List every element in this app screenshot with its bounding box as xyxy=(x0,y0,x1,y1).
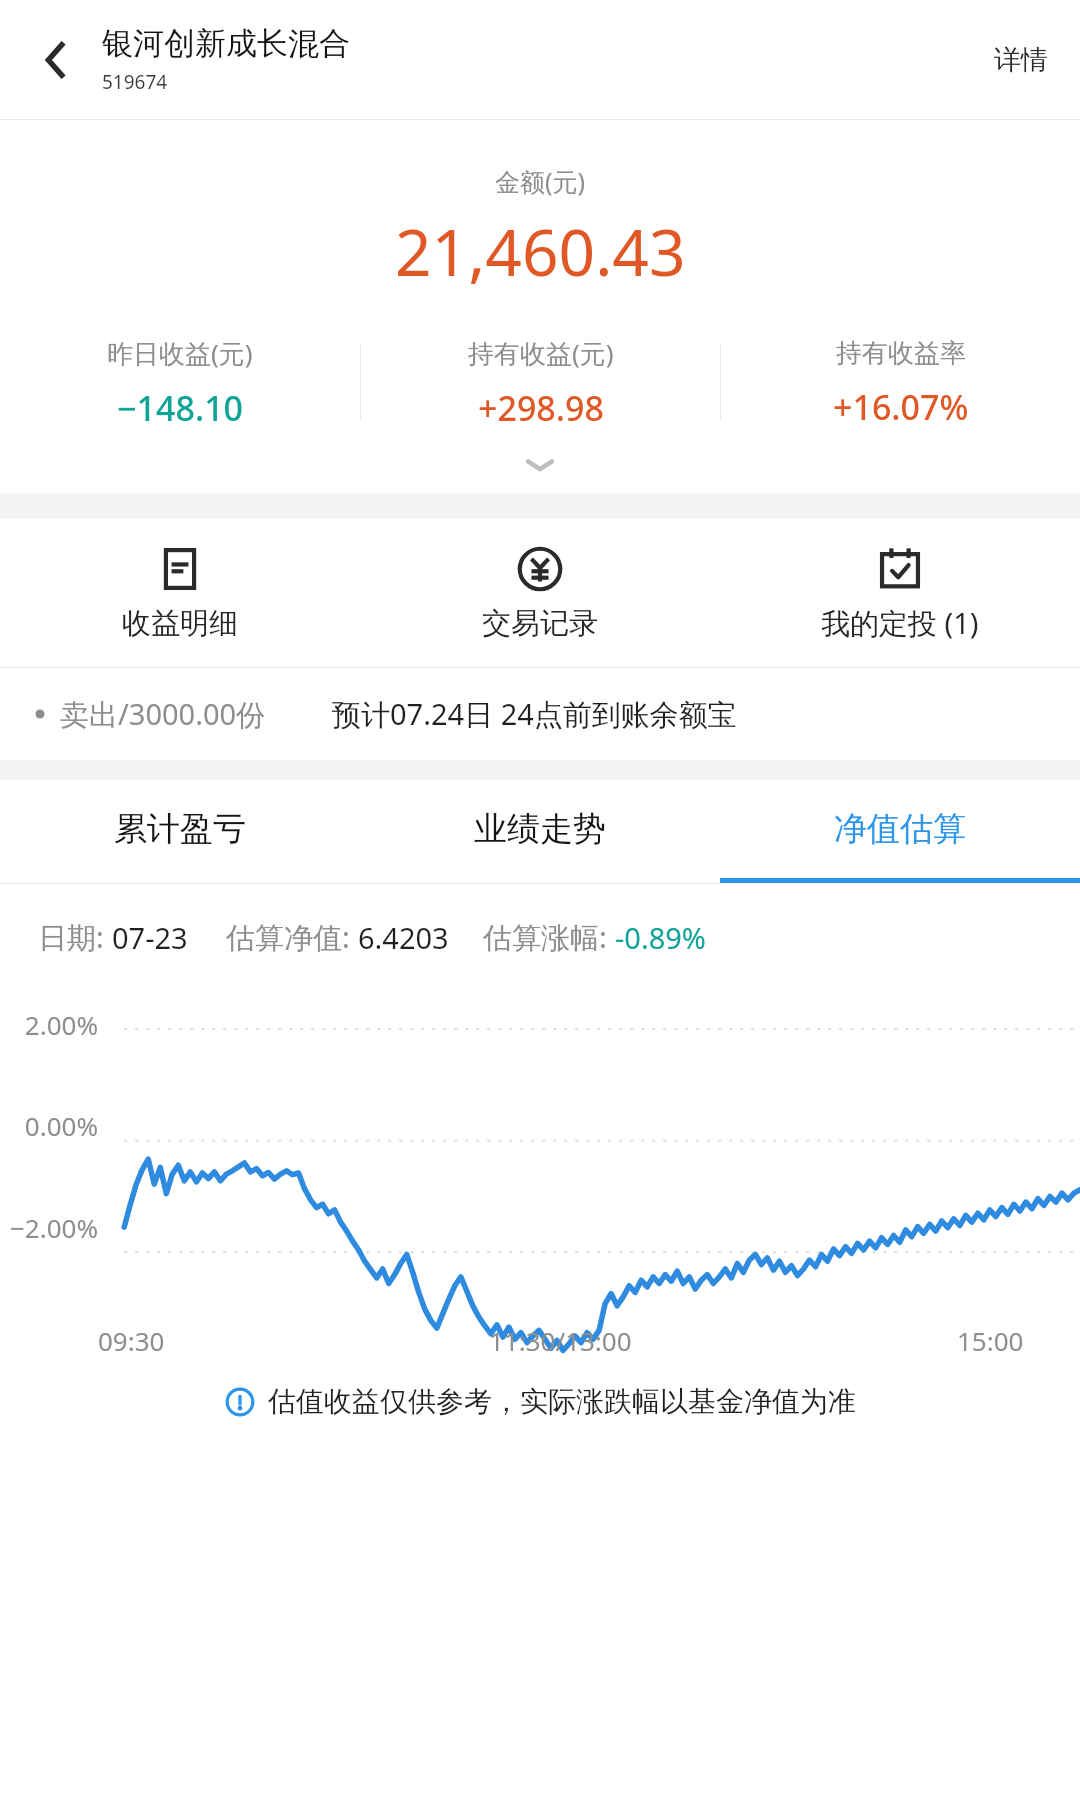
button[interactable]: 交易记录 xyxy=(360,519,720,667)
button[interactable]: 持有收益(元) xyxy=(361,329,720,437)
staticText: 11:30/13:00 xyxy=(489,1323,632,1358)
staticText: 卖出/3000.00份 xyxy=(60,694,266,734)
staticText: 昨日收益(元) xyxy=(107,335,253,371)
button[interactable]: 昨日收益(元) xyxy=(0,329,360,437)
staticText: +16.07% xyxy=(833,384,969,430)
staticText: +298.98 xyxy=(478,385,604,431)
button[interactable]: 收益明细 xyxy=(0,519,360,667)
staticText: 详情 xyxy=(994,43,1048,77)
staticText: 估算净值: xyxy=(226,917,358,957)
staticText: 07-23 xyxy=(112,918,188,957)
button[interactable]: 累计盈亏 xyxy=(0,780,360,878)
staticText: 业绩走势 xyxy=(474,808,606,850)
button[interactable]: Back xyxy=(12,20,92,100)
staticText: 净值估算 xyxy=(834,808,966,850)
staticText: −148.10 xyxy=(117,385,244,431)
staticText: -0.89% xyxy=(615,918,706,957)
staticText: 519674 xyxy=(102,69,168,95)
staticText: 日期: xyxy=(38,917,112,957)
staticText: 持有收益率 xyxy=(836,337,966,370)
staticText: 累计盈亏 xyxy=(114,808,246,850)
staticText: −2.00% xyxy=(0,1210,98,1245)
button[interactable]: 持有收益率 xyxy=(721,329,1080,437)
staticText: 估算涨幅: xyxy=(483,917,615,957)
button[interactable]: 净值估算 xyxy=(720,780,1080,878)
staticText: 09:30 xyxy=(98,1323,165,1358)
staticText: 收益明细 xyxy=(122,605,238,642)
staticText: 估值收益仅供参考，实际涨跌幅以基金净值为准 xyxy=(268,1384,856,1419)
staticText: 我的定投 (1) xyxy=(821,603,979,643)
button[interactable]: 我的定投 (1) xyxy=(720,519,1080,667)
staticText: 持有收益(元) xyxy=(468,335,614,371)
staticText: 15:00 xyxy=(957,1323,1024,1358)
staticText: 交易记录 xyxy=(482,605,598,642)
staticText: 银河创新成长混合 xyxy=(102,24,350,63)
button[interactable]: 详情 xyxy=(982,31,1060,89)
button[interactable]: 卖出/3000.00份 xyxy=(0,668,1080,760)
button[interactable]: Expand details xyxy=(0,437,1080,493)
staticText: 21,460.43 xyxy=(395,208,686,295)
staticText: 金额(元) xyxy=(495,164,586,198)
staticText: 2.00% xyxy=(0,1007,98,1042)
button[interactable]: 业绩走势 xyxy=(360,780,720,878)
staticText: 预计07.24日 24点前到账余额宝 xyxy=(332,694,737,734)
staticText: 0.00% xyxy=(0,1108,98,1143)
staticText: 6.4203 xyxy=(358,918,449,957)
